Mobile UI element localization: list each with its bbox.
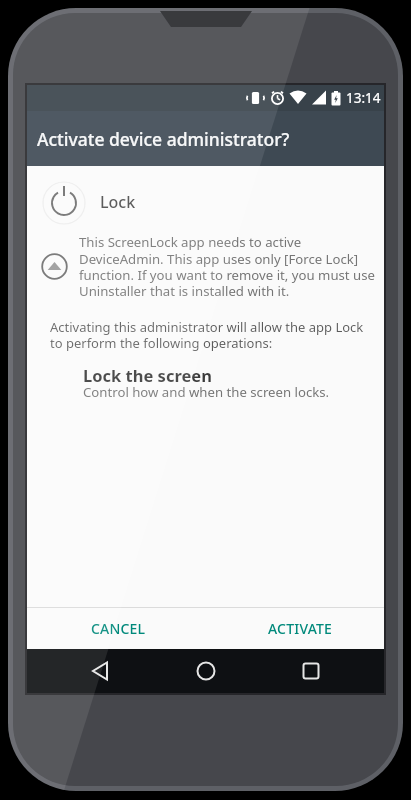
button[interactable] bbox=[184, 649, 228, 693]
staticText: This ScreenLock app needs to active Devi… bbox=[79, 233, 375, 300]
staticText: Activating this administrator will allow… bbox=[50, 318, 364, 352]
staticText: Lock bbox=[100, 191, 136, 213]
button[interactable] bbox=[289, 649, 333, 693]
staticText: Control how and when the screen locks. bbox=[83, 383, 330, 401]
staticText: ACTIVATE bbox=[268, 619, 333, 638]
staticText: CANCEL bbox=[91, 619, 146, 638]
button[interactable]: ACTIVATE bbox=[257, 610, 343, 646]
staticText: 13:14 bbox=[346, 89, 381, 107]
button[interactable]: CANCEL bbox=[79, 610, 157, 646]
staticText: Activate device administrator? bbox=[37, 127, 290, 151]
staticText: Lock the screen bbox=[83, 364, 212, 386]
button[interactable] bbox=[79, 649, 123, 693]
